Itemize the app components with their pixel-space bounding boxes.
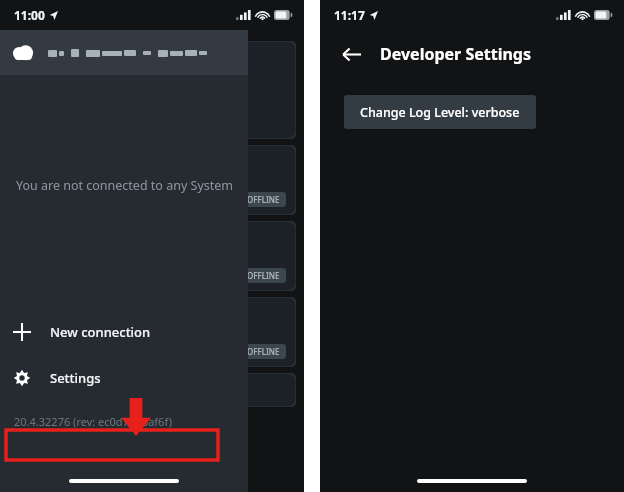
staticText: 11:17 — [334, 7, 365, 23]
staticText: 20.4.32276 (rev: ec0d7a8baf6f) — [14, 414, 172, 429]
staticText: OFFLINE — [247, 346, 280, 357]
staticText: Change Log Level: verbose — [360, 104, 520, 121]
button[interactable]: Change Log Level: verbose — [344, 95, 536, 129]
staticText: OFFLINE — [247, 270, 280, 281]
staticText: Developer Settings — [380, 43, 531, 65]
button[interactable]: Settings — [0, 362, 248, 394]
button[interactable] — [8, 41, 296, 139]
button[interactable] — [8, 373, 296, 407]
button[interactable]: OFFLINE — [8, 145, 296, 215]
staticText: Settings — [50, 369, 101, 387]
staticText: You are not connected to any System — [16, 177, 233, 194]
button[interactable]: Back — [338, 41, 364, 67]
button[interactable]: OFFLINE — [8, 297, 296, 367]
button[interactable]: New connection — [0, 316, 248, 348]
button[interactable]: OFFLINE — [8, 221, 296, 291]
staticText: 11:00 — [14, 7, 45, 23]
staticText: New connection — [50, 323, 151, 341]
staticText: OFFLINE — [247, 194, 280, 205]
